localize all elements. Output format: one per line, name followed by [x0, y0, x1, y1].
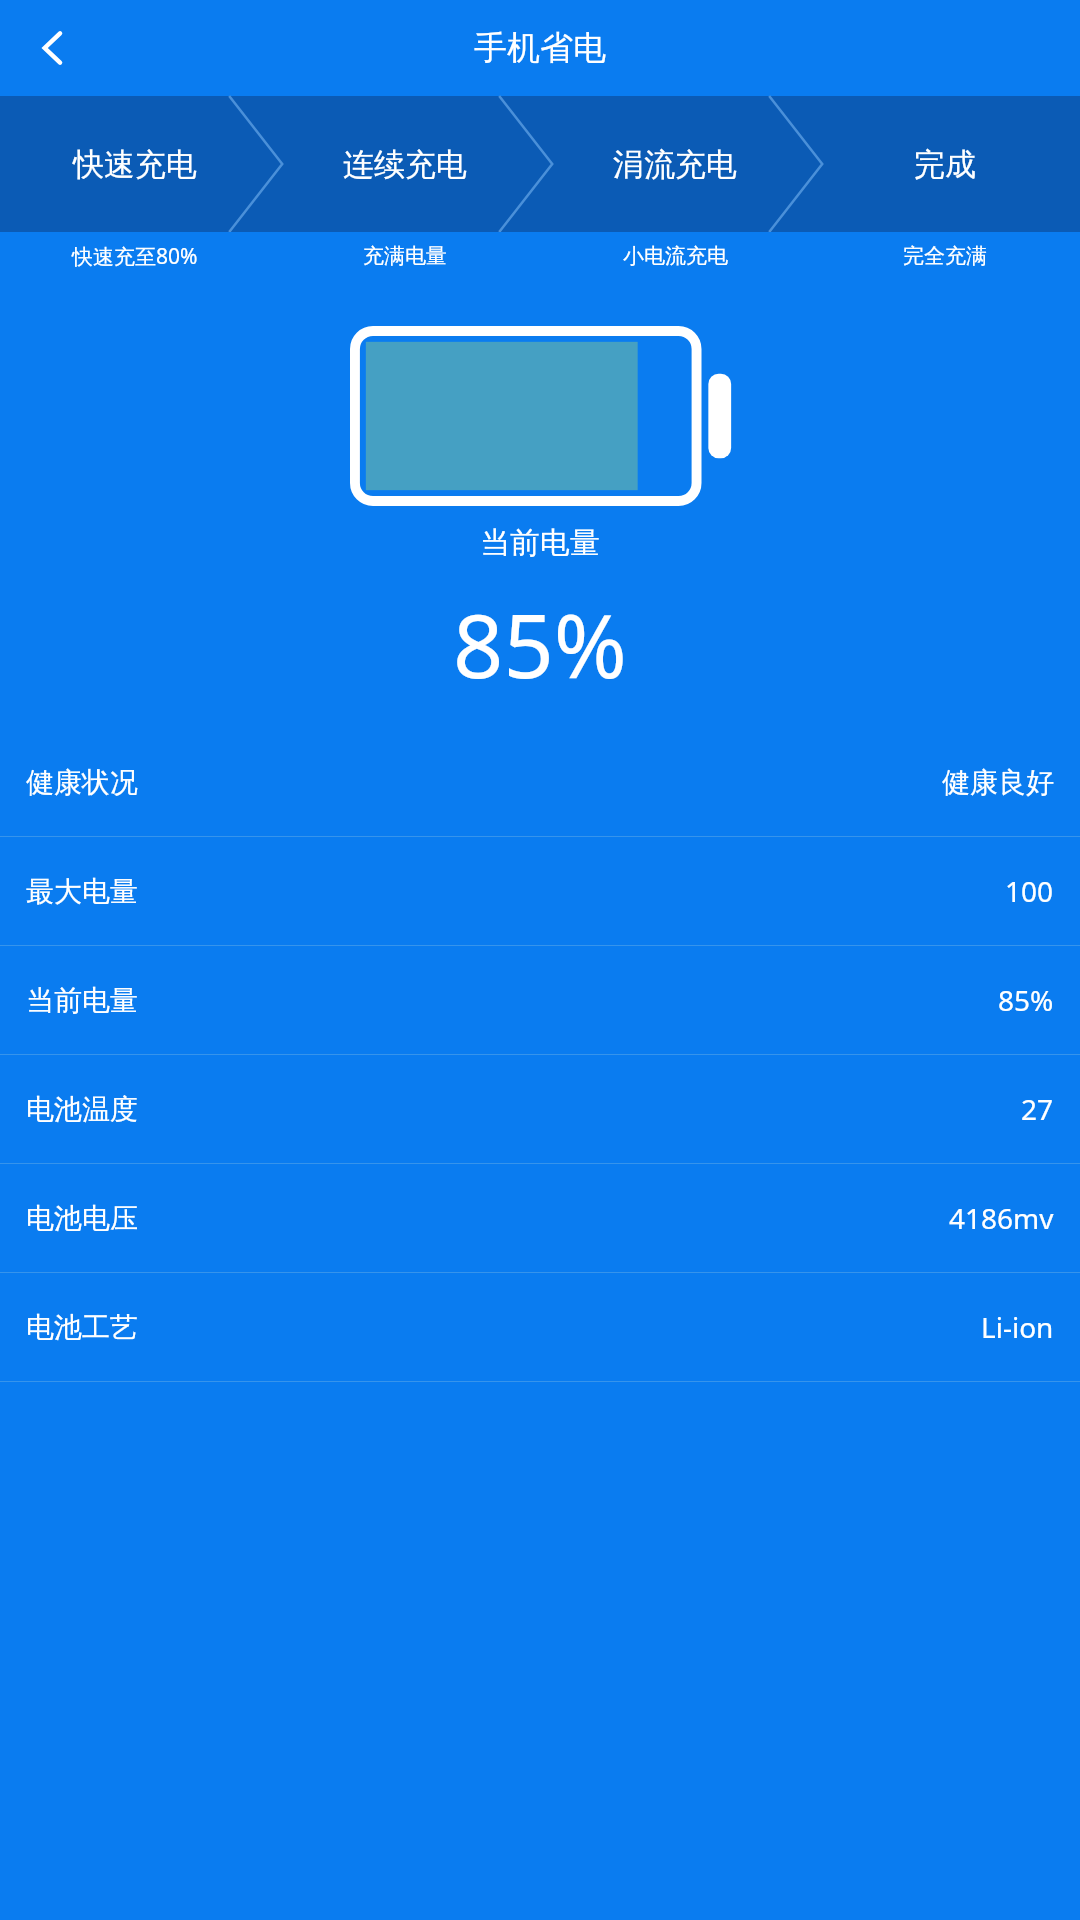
button[interactable]: 快速充电: [0, 96, 270, 232]
staticText: Li-ion: [981, 1308, 1054, 1346]
staticText: 85%: [0, 584, 1080, 704]
staticText: 85%: [998, 981, 1054, 1019]
button[interactable]: Back: [20, 15, 86, 81]
button[interactable]: 完成: [810, 96, 1080, 232]
button[interactable]: 涓流充电: [540, 96, 810, 232]
staticText: 连续充电: [343, 145, 467, 184]
staticText: 涓流充电: [613, 145, 737, 184]
staticText: 电池工艺: [26, 1310, 138, 1345]
staticText: 电池电压: [26, 1201, 138, 1236]
button[interactable]: 最大电量: [0, 837, 1080, 945]
button[interactable]: 电池工艺: [0, 1273, 1080, 1381]
staticText: 电池温度: [26, 1092, 138, 1127]
staticText: 快速充电: [73, 145, 197, 184]
staticText: 手机省电: [474, 27, 606, 69]
staticText: 完全充满: [903, 243, 987, 269]
button[interactable]: 电池电压: [0, 1164, 1080, 1272]
staticText: 当前电量: [26, 983, 138, 1018]
staticText: 最大电量: [26, 874, 138, 909]
staticText: 完成: [914, 145, 976, 184]
button[interactable]: 当前电量: [0, 946, 1080, 1054]
button[interactable]: 电池温度: [0, 1055, 1080, 1163]
button[interactable]: 健康状况: [0, 728, 1080, 836]
staticText: 27: [1021, 1090, 1054, 1128]
staticText: 小电流充电: [623, 243, 728, 269]
staticText: 快速充至80%: [72, 242, 198, 271]
staticText: 当前电量: [0, 524, 1080, 562]
button[interactable]: 连续充电: [270, 96, 540, 232]
staticText: 4186mv: [949, 1199, 1054, 1237]
staticText: 健康良好: [942, 765, 1054, 800]
staticText: 100: [1005, 872, 1054, 910]
staticText: 健康状况: [26, 765, 138, 800]
staticText: 充满电量: [363, 243, 447, 269]
